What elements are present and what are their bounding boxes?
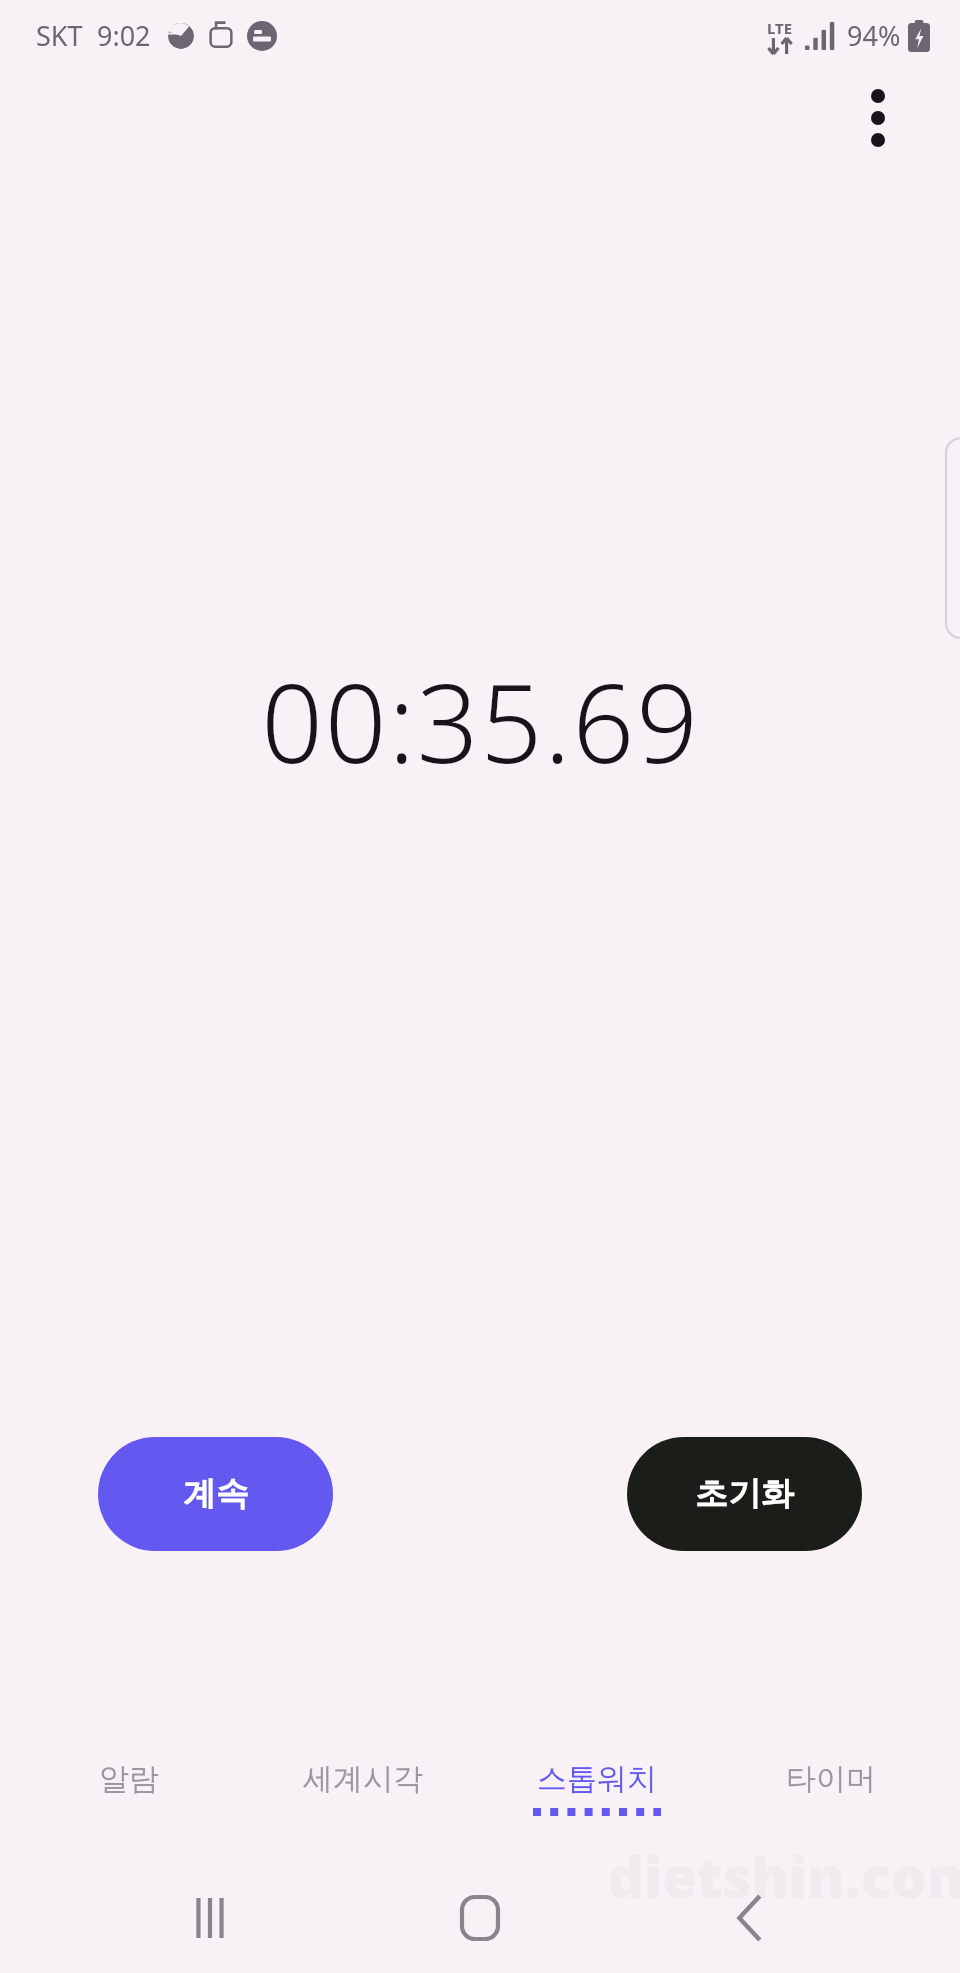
- staticText: 계속: [183, 1473, 249, 1515]
- button[interactable]: 계속: [98, 1437, 333, 1551]
- button[interactable]: More options: [832, 72, 924, 164]
- staticText: 세계시각: [303, 1760, 423, 1798]
- staticText: LTE: [767, 18, 793, 38]
- staticText: 스톱워치: [537, 1760, 657, 1798]
- staticText: 타이머: [786, 1760, 876, 1798]
- button[interactable]: 세계시각: [258, 1742, 468, 1798]
- button[interactable]: Back: [690, 1862, 810, 1973]
- staticText: 알람: [99, 1760, 159, 1798]
- staticText: 초기화: [695, 1473, 794, 1515]
- staticText: SKT: [36, 17, 83, 54]
- button[interactable]: 초기화: [627, 1437, 862, 1551]
- button[interactable]: 스톱워치: [492, 1742, 702, 1816]
- staticText: 9:02: [97, 17, 151, 54]
- button[interactable]: 타이머: [726, 1742, 936, 1798]
- staticText: 94%: [847, 17, 901, 54]
- button[interactable]: 알람: [24, 1742, 234, 1798]
- button[interactable]: Recent apps: [150, 1862, 270, 1973]
- staticText: dietshin.com: [608, 1838, 960, 1914]
- staticText: 00:35.69: [261, 648, 700, 795]
- button[interactable]: Home: [420, 1862, 540, 1973]
